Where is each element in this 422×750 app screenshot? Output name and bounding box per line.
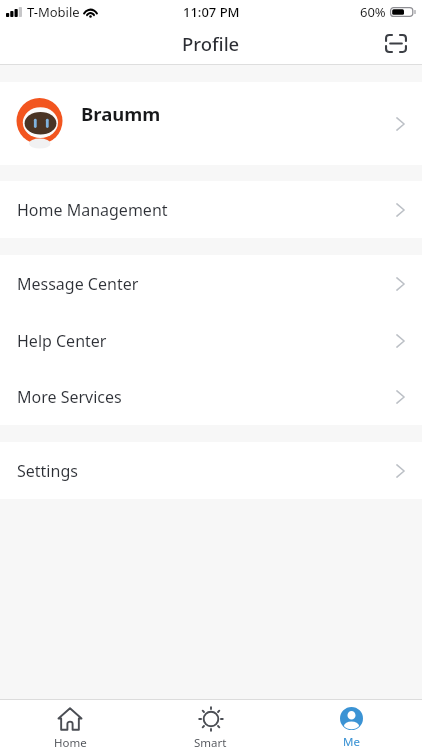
button[interactable]: Settings [0,442,422,499]
staticText: Home [54,735,87,750]
button[interactable]: Home Management [0,181,422,238]
staticText: Smart [194,735,227,750]
staticText: Message Center [17,273,139,295]
button[interactable]: Smart [140,700,281,750]
button[interactable]: Me [281,700,422,750]
staticText: T-Mobile [27,3,80,21]
staticText: Me [343,734,360,750]
button[interactable]: Scan [376,26,416,65]
staticText: Profile [182,31,240,56]
staticText: 60% [360,3,386,21]
button[interactable]: Message Center [0,255,422,312]
staticText: Home Management [17,199,168,221]
staticText: 11:07 PM [183,3,240,21]
button[interactable]: Braumm [0,82,422,165]
staticText: Settings [17,460,78,482]
button[interactable]: Help Center [0,312,422,369]
button[interactable]: More Services [0,369,422,425]
button[interactable]: Home [0,700,140,750]
staticText: Help Center [17,330,107,352]
staticText: More Services [17,386,122,408]
staticText: Braumm [81,101,161,126]
